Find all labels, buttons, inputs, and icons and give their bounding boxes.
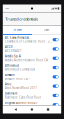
button[interactable]: Amazon xyxy=(3,72,61,81)
staticText: 12:30 xyxy=(5,8,9,9)
button[interactable]: ACCV xyxy=(3,44,61,54)
button[interactable]: Home xyxy=(29,106,35,112)
staticText: Buypass AS-983163327 xyxy=(5,101,38,105)
staticText: AC Camerfirma S.A. xyxy=(5,36,30,39)
staticText: Buypass Class 2 Root CA xyxy=(5,105,38,108)
staticText: AffirmTrust xyxy=(5,64,19,67)
staticText: Trusted credentials xyxy=(5,16,38,22)
staticText: Baltimore xyxy=(5,92,18,95)
button[interactable]: SYSTEM xyxy=(3,25,32,35)
staticText: Chambers of Commerce Root - 2008 xyxy=(5,40,52,43)
button[interactable]: AC Camerfirma S.A. xyxy=(3,35,61,44)
button[interactable]: Buypass AS-983163327 xyxy=(3,100,61,109)
button[interactable]: Baltimore xyxy=(3,91,61,100)
staticText: AffirmTrust Commercial xyxy=(5,68,35,71)
staticText: Baltimore CyberTrust Root xyxy=(5,96,41,99)
button[interactable]: Atos xyxy=(3,81,61,91)
staticText: ACCVRAIZ1 xyxy=(5,49,22,53)
staticText: Atos TrustedRoot 2011 xyxy=(5,86,38,90)
staticText: Atos xyxy=(5,82,11,86)
staticText: Actalis Authentication Root CA xyxy=(5,58,48,62)
staticText: Amazon Root CA 1 xyxy=(5,77,31,80)
staticText: Amazon xyxy=(5,73,15,77)
staticText: SYSTEM xyxy=(13,28,21,31)
button[interactable]: USER xyxy=(32,25,61,35)
staticText: USER xyxy=(44,28,50,31)
staticText: ACCV xyxy=(5,45,13,49)
button[interactable]: Recent apps xyxy=(45,106,51,112)
button[interactable]: Back xyxy=(13,106,19,112)
button[interactable]: Actalis S.p.A. xyxy=(3,54,61,63)
button[interactable]: AffirmTrust xyxy=(3,63,61,72)
staticText: Actalis S.p.A. xyxy=(5,55,22,58)
